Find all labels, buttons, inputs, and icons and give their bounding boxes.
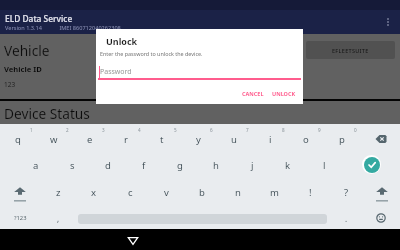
- staticText: r: [124, 133, 128, 146]
- staticText: h: [213, 159, 219, 172]
- staticText: CANCEL: [242, 90, 264, 97]
- staticText: ?123: [14, 214, 27, 222]
- staticText: Device Status: [4, 104, 90, 123]
- staticText: ,: [57, 213, 60, 224]
- button[interactable]: CANCEL: [241, 87, 265, 99]
- staticText: ?: [344, 186, 349, 199]
- staticText: e: [87, 133, 93, 146]
- button[interactable]: m: [256, 179, 292, 205]
- staticText: ELD Data Service: [5, 13, 73, 24]
- button[interactable]: g: [162, 152, 198, 178]
- staticText: Vehicle: [4, 41, 50, 60]
- button[interactable]: i: [252, 126, 288, 152]
- button[interactable]: b: [184, 179, 220, 205]
- staticText: Password: [100, 67, 132, 77]
- button[interactable]: f: [126, 152, 162, 178]
- staticText: l: [323, 159, 326, 172]
- staticText: j: [251, 159, 254, 172]
- staticText: Version 1.3.14 IMEI 860712040262308: [5, 24, 121, 32]
- button[interactable]: v: [148, 179, 184, 205]
- button[interactable]: d: [90, 152, 126, 178]
- button[interactable]: .: [334, 208, 358, 228]
- staticText: !: [309, 186, 312, 199]
- button[interactable]: u: [216, 126, 252, 152]
- staticText: 4: [138, 127, 141, 133]
- button[interactable]: w: [36, 126, 72, 152]
- button[interactable]: c: [112, 179, 148, 205]
- staticText: 5: [174, 127, 177, 133]
- staticText: p: [339, 133, 345, 146]
- staticText: x: [91, 186, 97, 199]
- staticText: z: [56, 186, 61, 199]
- staticText: n: [235, 186, 241, 199]
- button[interactable]: !: [292, 179, 328, 205]
- staticText: 0: [354, 127, 357, 133]
- button[interactable]: s: [54, 152, 90, 178]
- staticText: Unlock: [106, 35, 138, 47]
- button[interactable]: h: [198, 152, 234, 178]
- button[interactable]: x: [76, 179, 112, 205]
- button[interactable]: t: [144, 126, 180, 152]
- button[interactable]: Enter: [364, 157, 380, 173]
- button[interactable]: l: [306, 152, 342, 178]
- staticText: w: [50, 133, 58, 146]
- button[interactable]: z: [40, 179, 76, 205]
- staticText: 8: [282, 127, 285, 133]
- staticText: a: [33, 159, 39, 172]
- staticText: 3: [102, 127, 105, 133]
- staticText: 1: [30, 127, 33, 133]
- button[interactable]: Backspace: [362, 126, 400, 152]
- staticText: EFLEETSUITE: [332, 47, 369, 54]
- button[interactable]: a: [18, 152, 54, 178]
- staticText: d: [105, 159, 111, 172]
- staticText: q: [15, 133, 21, 146]
- button[interactable]: ?123: [4, 208, 36, 228]
- staticText: 9: [318, 127, 321, 133]
- staticText: 2: [66, 127, 69, 133]
- button[interactable]: k: [270, 152, 306, 178]
- button[interactable]: o: [288, 126, 324, 152]
- staticText: 6: [210, 127, 213, 133]
- button[interactable]: Shift: [364, 179, 400, 205]
- staticText: UNLOCK: [272, 90, 296, 97]
- button[interactable]: UNLOCK: [272, 87, 296, 99]
- staticText: .: [345, 213, 348, 224]
- staticText: 7: [246, 127, 249, 133]
- button[interactable]: j: [234, 152, 270, 178]
- button[interactable]: Shift: [2, 179, 38, 205]
- button[interactable]: e: [72, 126, 108, 152]
- staticText: Enter the password to unlock the device.: [100, 50, 203, 57]
- button[interactable]: r: [108, 126, 144, 152]
- staticText: 123: [4, 80, 16, 89]
- button[interactable]: ,: [46, 208, 70, 228]
- button[interactable]: ?: [328, 179, 364, 205]
- button[interactable]: EFLEETSUITE: [306, 41, 395, 59]
- staticText: g: [177, 159, 183, 172]
- staticText: t: [160, 133, 164, 146]
- button[interactable]: p: [324, 126, 360, 152]
- staticText: k: [285, 159, 291, 172]
- staticText: i: [269, 133, 272, 146]
- staticText: s: [70, 159, 75, 172]
- staticText: u: [231, 133, 237, 146]
- staticText: b: [199, 186, 205, 199]
- staticText: y: [196, 133, 201, 146]
- staticText: v: [164, 186, 169, 199]
- staticText: Vehicle ID: [4, 64, 42, 74]
- staticText: c: [128, 186, 133, 199]
- staticText: o: [303, 133, 309, 146]
- button[interactable]: q: [0, 126, 36, 152]
- button[interactable]: n: [220, 179, 256, 205]
- button[interactable]: Emoji: [369, 208, 393, 228]
- button[interactable]: Back: [121, 230, 145, 250]
- button[interactable]: More options: [380, 14, 396, 30]
- staticText: f: [142, 159, 146, 172]
- staticText: m: [270, 186, 279, 199]
- button[interactable]: y: [180, 126, 216, 152]
